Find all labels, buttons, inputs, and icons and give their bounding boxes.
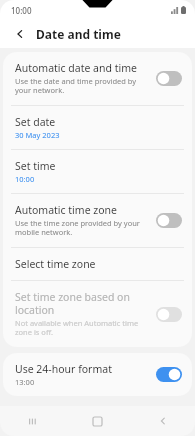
button[interactable]: Select time zone: [3, 248, 192, 280]
staticText: Automatic time zone: [15, 203, 117, 217]
button[interactable]: Set time: [3, 150, 192, 193]
button[interactable]: Use 24-hour format: [3, 353, 192, 396]
staticText: Set date: [15, 115, 56, 129]
button[interactable]: Automatic time zone: [3, 194, 192, 247]
button[interactable]: Toggle: [156, 367, 182, 382]
staticText: 30 May 2023: [15, 130, 60, 140]
button[interactable]: Set time zone based on location: [3, 281, 192, 347]
staticText: Set time: [15, 159, 56, 173]
button[interactable]: Home: [65, 406, 130, 436]
button[interactable]: Recent apps: [0, 406, 65, 436]
staticText: 13:00: [15, 377, 35, 387]
staticText: 10:00: [11, 5, 32, 16]
staticText: Date and time: [36, 26, 121, 42]
button[interactable]: Toggle: [156, 71, 182, 86]
staticText: Select time zone: [15, 257, 96, 271]
button[interactable]: Toggle: [156, 213, 182, 228]
staticText: Not available when Automatic time zone i…: [15, 318, 148, 338]
button[interactable]: Back: [11, 25, 29, 43]
staticText: Use 24-hour format: [15, 362, 112, 376]
button[interactable]: Back: [130, 406, 195, 436]
staticText: Automatic date and time: [15, 61, 137, 75]
staticText: 10:00: [15, 174, 35, 184]
staticText: Set time zone based on location: [15, 290, 148, 317]
button[interactable]: Automatic date and time: [3, 52, 192, 105]
staticText: Use the date and time provided by your n…: [15, 76, 148, 96]
button[interactable]: Toggle: [156, 307, 182, 322]
staticText: Use the time zone provided by your mobil…: [15, 218, 148, 238]
button[interactable]: Set date: [3, 106, 192, 149]
